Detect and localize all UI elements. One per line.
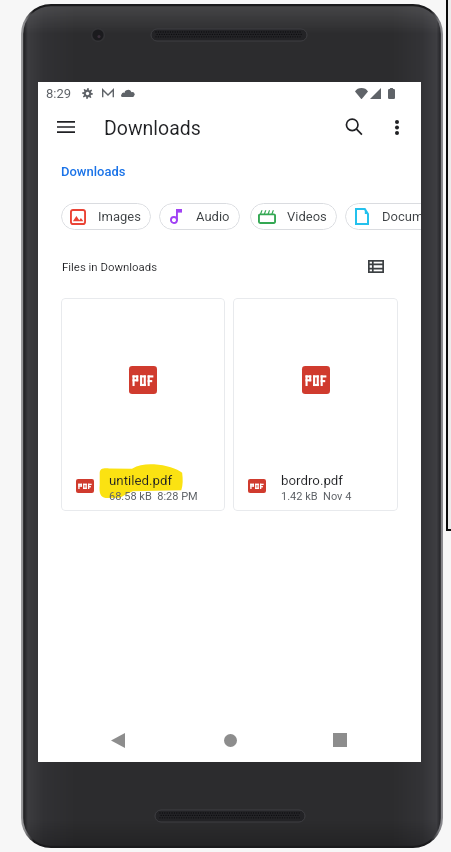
staticText: Documents [382, 209, 421, 224]
button[interactable]: Downloads [55, 160, 132, 183]
button[interactable]: Images [61, 203, 151, 230]
button[interactable]: untiled.pdf [61, 298, 225, 511]
button[interactable]: bordro.pdf [233, 298, 398, 511]
button[interactable]: Open navigation menu [47, 108, 85, 146]
button[interactable]: Recent apps [318, 718, 362, 762]
staticText: 8:29 [46, 86, 72, 101]
button[interactable]: Audio [159, 203, 240, 230]
staticText: bordro.pdf [281, 473, 343, 489]
button[interactable]: More options [378, 108, 416, 146]
staticText: Files in Downloads [62, 260, 158, 273]
button[interactable]: Documents [345, 203, 421, 230]
staticText: untiled.pdf [109, 473, 173, 489]
staticText: Images [98, 209, 141, 224]
staticText: Downloads [104, 117, 201, 140]
button[interactable]: Videos [250, 203, 337, 230]
button[interactable]: Back [96, 718, 140, 762]
staticText: Downloads [61, 164, 126, 179]
button[interactable]: Switch to list view [359, 250, 393, 283]
button[interactable]: Home [208, 718, 252, 762]
button[interactable]: Search [335, 108, 373, 146]
staticText: Videos [287, 209, 327, 224]
staticText: 68.58 kB 8:28 PM [109, 490, 198, 503]
staticText: Audio [196, 209, 230, 224]
staticText: 1.42 kB Nov 4 [281, 490, 352, 503]
